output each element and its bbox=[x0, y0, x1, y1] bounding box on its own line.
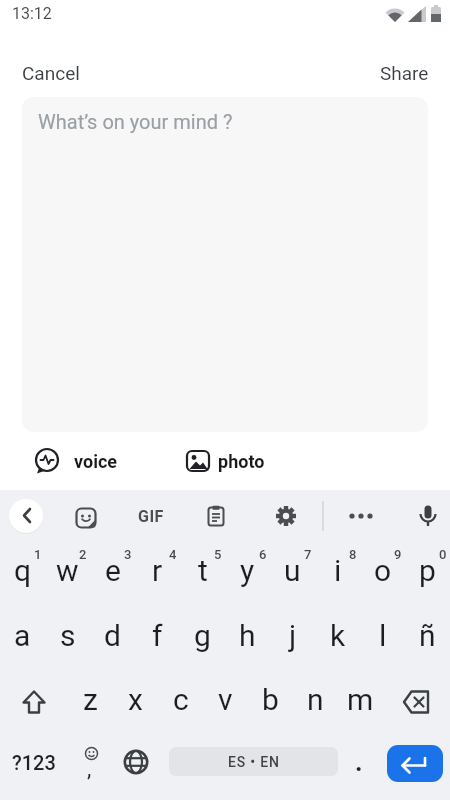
staticText: . bbox=[355, 747, 363, 777]
button[interactable]: q bbox=[0, 542, 45, 604]
button[interactable]: g bbox=[180, 604, 225, 666]
button[interactable] bbox=[345, 505, 377, 527]
button[interactable]: o bbox=[360, 542, 405, 604]
button[interactable] bbox=[383, 728, 450, 790]
button[interactable]: i bbox=[315, 542, 360, 604]
staticText: 0 bbox=[439, 547, 447, 562]
staticText: k bbox=[330, 618, 346, 653]
button[interactable]: voice bbox=[0, 448, 118, 474]
button[interactable]: w bbox=[45, 542, 90, 604]
button[interactable] bbox=[417, 505, 439, 527]
staticText: What’s on your mind ? bbox=[38, 110, 233, 133]
button[interactable]: r bbox=[135, 542, 180, 604]
staticText: j bbox=[289, 618, 297, 653]
button[interactable]: e bbox=[90, 542, 135, 604]
button[interactable]: z bbox=[68, 666, 113, 728]
staticText: 5 bbox=[214, 547, 222, 562]
button[interactable]: n bbox=[293, 666, 338, 728]
staticText: o bbox=[374, 553, 392, 588]
button[interactable]: j bbox=[270, 604, 315, 666]
staticText: Cancel bbox=[22, 62, 80, 84]
staticText: e bbox=[105, 553, 121, 588]
staticText: 4 bbox=[169, 547, 177, 562]
button[interactable]: t bbox=[180, 542, 225, 604]
button[interactable]: l bbox=[360, 604, 405, 666]
button[interactable]: Share bbox=[380, 62, 429, 84]
button[interactable]: p bbox=[405, 542, 450, 604]
staticText: ?123 bbox=[12, 751, 56, 774]
staticText: l bbox=[379, 618, 387, 653]
staticText: , bbox=[87, 756, 92, 782]
button[interactable] bbox=[75, 507, 97, 529]
button[interactable]: ñ bbox=[405, 604, 450, 666]
button[interactable]: photo bbox=[185, 448, 265, 474]
staticText: w bbox=[56, 553, 79, 588]
button[interactable]: y bbox=[225, 542, 270, 604]
staticText: h bbox=[239, 618, 256, 653]
button[interactable]: GIF bbox=[131, 490, 171, 542]
staticText: b bbox=[262, 682, 279, 717]
staticText: i bbox=[334, 553, 342, 588]
button[interactable]: v bbox=[203, 666, 248, 728]
button[interactable]: . bbox=[338, 728, 383, 790]
staticText: voice bbox=[74, 451, 118, 472]
button[interactable] bbox=[383, 666, 450, 728]
staticText: f bbox=[152, 618, 163, 653]
staticText: a bbox=[14, 618, 31, 653]
staticText: r bbox=[152, 553, 163, 588]
staticText: g bbox=[194, 618, 211, 653]
staticText: d bbox=[104, 618, 121, 653]
staticText: v bbox=[218, 682, 233, 717]
staticText: 9 bbox=[394, 547, 402, 562]
button[interactable]: b bbox=[248, 666, 293, 728]
staticText: q bbox=[14, 553, 32, 588]
button[interactable] bbox=[205, 505, 227, 527]
staticText: 3 bbox=[124, 547, 132, 562]
staticText: x bbox=[128, 682, 143, 717]
staticText: z bbox=[83, 682, 98, 717]
staticText: Share bbox=[380, 62, 429, 84]
staticText: t bbox=[198, 553, 208, 588]
button[interactable]: c bbox=[158, 666, 203, 728]
staticText: p bbox=[419, 553, 436, 588]
staticText: ES • EN bbox=[228, 754, 280, 770]
staticText: y bbox=[240, 553, 255, 588]
button[interactable]: What’s on your mind ? bbox=[22, 97, 428, 432]
staticText: GIF bbox=[138, 507, 164, 526]
button[interactable] bbox=[113, 728, 158, 790]
staticText: 1 bbox=[34, 547, 42, 562]
staticText: photo bbox=[218, 451, 265, 472]
staticText: 7 bbox=[304, 547, 312, 562]
button[interactable]: x bbox=[113, 666, 158, 728]
staticText: ñ bbox=[419, 618, 436, 653]
button[interactable]: ?123 bbox=[0, 728, 68, 790]
button[interactable]: m bbox=[338, 666, 383, 728]
button[interactable]: ES • EN bbox=[158, 728, 338, 790]
staticText: m bbox=[347, 682, 374, 717]
button[interactable]: , bbox=[68, 728, 113, 790]
button[interactable]: f bbox=[135, 604, 180, 666]
button[interactable] bbox=[0, 666, 68, 728]
button[interactable] bbox=[9, 499, 43, 533]
staticText: 6 bbox=[259, 547, 267, 562]
staticText: 8 bbox=[349, 547, 357, 562]
staticText: 2 bbox=[79, 547, 87, 562]
button[interactable]: u bbox=[270, 542, 315, 604]
staticText: u bbox=[284, 553, 301, 588]
button[interactable]: a bbox=[0, 604, 45, 666]
button[interactable]: k bbox=[315, 604, 360, 666]
button[interactable] bbox=[275, 505, 297, 527]
button[interactable]: Cancel bbox=[22, 62, 80, 84]
button[interactable]: h bbox=[225, 604, 270, 666]
button[interactable]: d bbox=[90, 604, 135, 666]
staticText: c bbox=[173, 682, 189, 717]
staticText: n bbox=[307, 682, 324, 717]
staticText: 13:12 bbox=[12, 4, 52, 23]
staticText: s bbox=[60, 618, 76, 653]
button[interactable]: s bbox=[45, 604, 90, 666]
